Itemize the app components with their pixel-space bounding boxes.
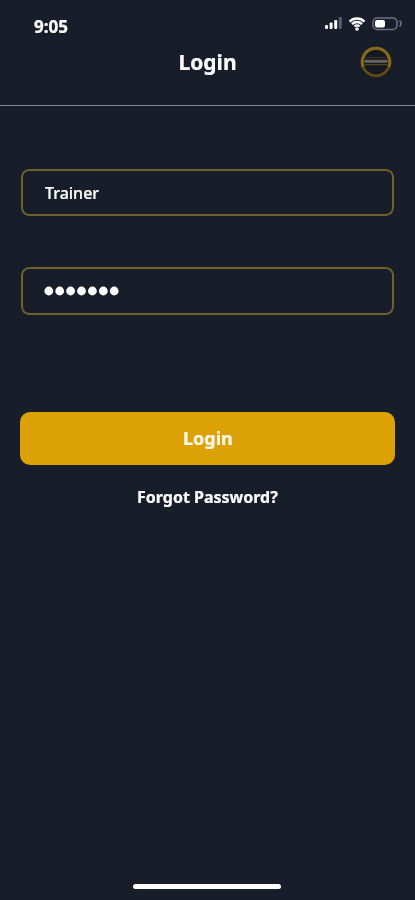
staticText: Trainer [45, 182, 100, 204]
staticText: Login [0, 48, 415, 77]
button[interactable]: Login [20, 412, 395, 465]
staticText: 9:05 [34, 15, 68, 38]
button[interactable]: Forgot Password? [137, 486, 278, 508]
staticText: Login [183, 426, 233, 451]
button[interactable] [21, 267, 394, 315]
button[interactable]: Trainer [21, 169, 394, 216]
